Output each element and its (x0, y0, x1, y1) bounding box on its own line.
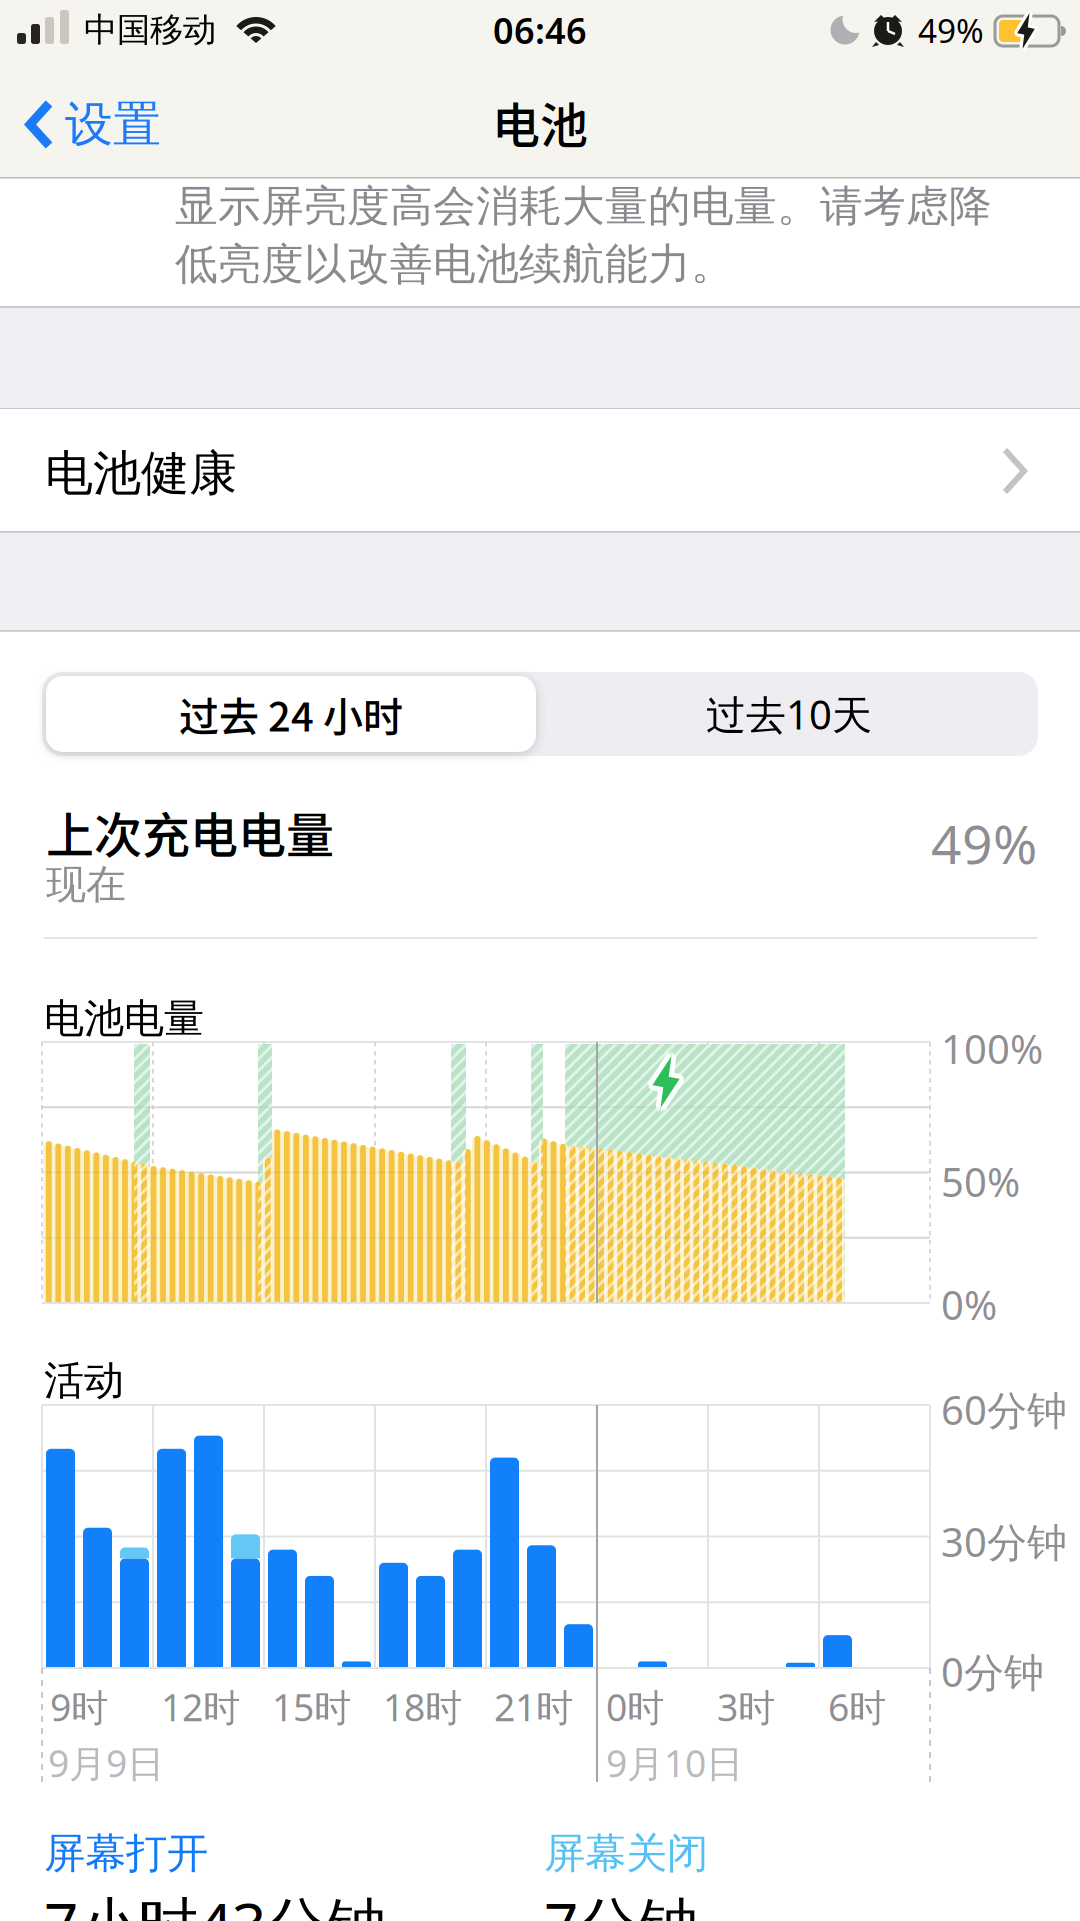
button[interactable]: 电池健康 (0, 409, 1080, 531)
staticText: 0分钟 (941, 1645, 1044, 1698)
staticText: 12时 (161, 1682, 240, 1732)
staticText: 设置 (65, 95, 161, 154)
staticText: 21时 (494, 1682, 573, 1732)
staticText: 上次充电电量 (46, 797, 334, 866)
staticText: 30分钟 (941, 1515, 1067, 1568)
staticText: 49% (918, 8, 984, 52)
staticText: 0时 (606, 1682, 664, 1732)
staticText: 06:46 (493, 6, 587, 54)
staticText: 6时 (828, 1682, 886, 1732)
staticText: 过去10天 (706, 687, 872, 740)
button[interactable]: 过去10天 (544, 676, 1034, 752)
staticText: 60分钟 (941, 1383, 1067, 1436)
staticText: 9月10日 (606, 1738, 743, 1788)
button[interactable]: 设置 (25, 95, 161, 154)
staticText: 活动 (44, 1356, 124, 1405)
staticText: 18时 (383, 1682, 462, 1732)
staticText: 7小时43分钟 (44, 1884, 386, 1921)
staticText: 9时 (50, 1682, 108, 1732)
staticText: 49% (931, 808, 1037, 879)
staticText: 3时 (717, 1682, 775, 1732)
button[interactable]: 过去 24 小时 (46, 676, 536, 752)
staticText: 15时 (272, 1682, 351, 1732)
staticText: 显示屏亮度高会消耗大量的电量。请考虑降 (175, 180, 992, 232)
staticText: 电池健康 (45, 444, 237, 503)
staticText: 电池电量 (44, 994, 204, 1043)
staticText: 过去 24 小时 (179, 685, 403, 743)
staticText: 0% (941, 1278, 997, 1331)
staticText: 屏幕打开 (44, 1828, 208, 1879)
staticText: 7分钟 (544, 1884, 698, 1921)
staticText: 电池 (492, 87, 588, 157)
staticText: 100% (941, 1022, 1043, 1075)
staticText: 低亮度以改善电池续航能力。 (175, 238, 734, 290)
staticText: 9月9日 (48, 1738, 164, 1788)
staticText: 现在 (46, 860, 126, 909)
staticText: 中国移动 (84, 9, 216, 50)
staticText: 屏幕关闭 (544, 1828, 708, 1879)
staticText: 50% (941, 1155, 1020, 1208)
